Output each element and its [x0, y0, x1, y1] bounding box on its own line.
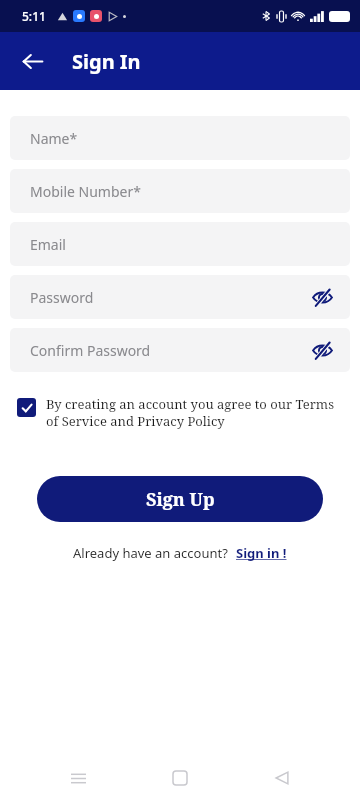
staticText: Sign in !: [236, 544, 287, 562]
staticText: 5:11: [22, 8, 46, 24]
button[interactable]: Show password: [306, 281, 338, 313]
button[interactable]: Sign Up: [37, 476, 323, 522]
staticText: Sign Up: [146, 487, 215, 512]
button[interactable]: Recents: [54, 756, 102, 800]
button[interactable]: Sign in !: [236, 544, 287, 562]
button[interactable]: Name*: [10, 116, 350, 160]
staticText: Name*: [30, 129, 78, 148]
staticText: Mobile Number*: [30, 182, 141, 201]
button[interactable]: Confirm Password: [10, 328, 350, 372]
staticText: Confirm Password: [30, 341, 151, 360]
button[interactable]: Back: [258, 756, 306, 800]
staticText: By creating an account you agree to our …: [46, 395, 343, 430]
button[interactable]: Mobile Number*: [10, 169, 350, 213]
button[interactable]: By creating an account you agree to our …: [17, 395, 343, 430]
staticText: Password: [30, 288, 94, 307]
button[interactable]: Home: [156, 756, 204, 800]
staticText: Sign In: [72, 48, 141, 75]
button[interactable]: Password: [10, 275, 350, 319]
button[interactable]: Email: [10, 222, 350, 266]
staticText: Already have an account?: [73, 544, 228, 562]
staticText: Email: [30, 235, 66, 254]
button[interactable]: Show password: [306, 334, 338, 366]
button[interactable]: Back: [12, 41, 52, 81]
